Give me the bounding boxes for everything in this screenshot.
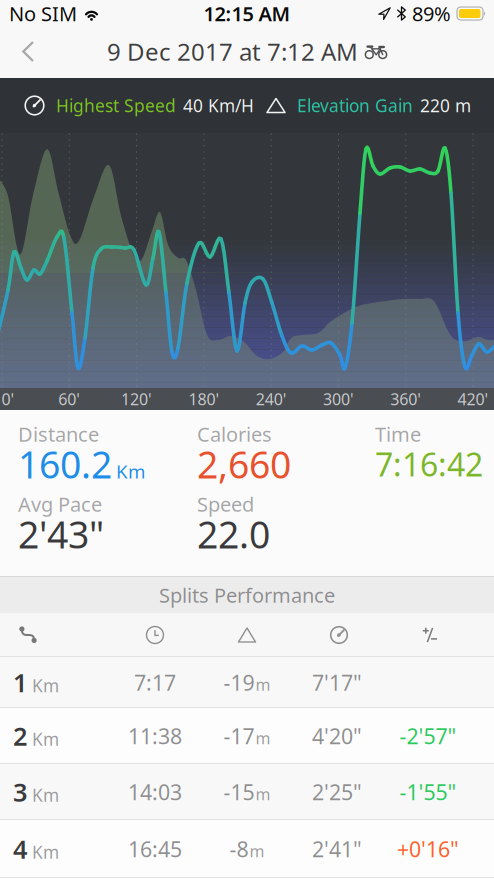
staticText: 7:16:42	[375, 443, 483, 485]
staticText: 11:38	[128, 722, 182, 750]
staticText: 360'	[390, 388, 421, 410]
staticText: 2,660	[197, 439, 291, 489]
staticText: 220 m	[420, 94, 471, 117]
staticText: m	[255, 727, 270, 749]
staticText: 22.0	[197, 509, 270, 559]
staticText: Highest Speed	[56, 94, 176, 117]
staticText: +0'16"	[397, 835, 459, 863]
staticText: -8	[229, 835, 248, 863]
staticText: Km	[32, 784, 59, 807]
staticText: 160.2	[18, 439, 112, 489]
staticText: 0'	[1, 388, 14, 410]
staticText: 16:45	[128, 835, 182, 863]
staticText: m	[249, 840, 264, 862]
staticText: 4	[13, 832, 27, 866]
staticText: 2'25"	[312, 778, 362, 806]
staticText: Avg Pace	[18, 491, 102, 517]
staticText: Speed	[197, 491, 254, 517]
staticText: Splits Performance	[159, 582, 335, 608]
staticText: 60'	[58, 388, 80, 410]
staticText: 4'20"	[312, 722, 362, 750]
staticText: 120'	[121, 388, 152, 410]
staticText: -17	[223, 722, 254, 750]
staticText: 2'41"	[312, 835, 362, 863]
staticText: 240'	[256, 388, 287, 410]
staticText: m	[255, 783, 270, 805]
staticText: 300'	[323, 388, 354, 410]
staticText: 40 Km/H	[183, 94, 254, 117]
staticText: -2'57"	[399, 722, 456, 750]
staticText: 9 Dec 2017 at 7:12 AM	[107, 36, 358, 67]
staticText: m	[255, 674, 270, 695]
staticText: Km	[32, 841, 59, 864]
staticText: No SIM	[9, 0, 77, 27]
staticText: Km	[116, 459, 145, 484]
staticText: 2	[13, 719, 27, 753]
staticText: 180'	[188, 388, 219, 410]
staticText: Elevation Gain	[297, 94, 413, 117]
staticText: 420'	[458, 388, 489, 410]
staticText: Km	[32, 674, 59, 697]
staticText: 7:17	[134, 668, 176, 697]
button[interactable]: Back	[0, 33, 58, 70]
staticText: Calories	[197, 421, 272, 447]
staticText: 3	[13, 775, 27, 809]
staticText: 89%	[412, 0, 451, 27]
staticText: -15	[223, 778, 254, 806]
staticText: -19	[223, 668, 254, 697]
staticText: Distance	[18, 421, 99, 447]
staticText: 2'43"	[18, 509, 104, 559]
staticText: 12:15 AM	[203, 0, 290, 27]
staticText: Km	[32, 728, 59, 751]
staticText: 1	[13, 666, 27, 699]
staticText: -1'55"	[399, 778, 456, 806]
staticText: 14:03	[128, 778, 182, 806]
staticText: Time	[375, 421, 421, 447]
staticText: 7'17"	[312, 668, 362, 697]
